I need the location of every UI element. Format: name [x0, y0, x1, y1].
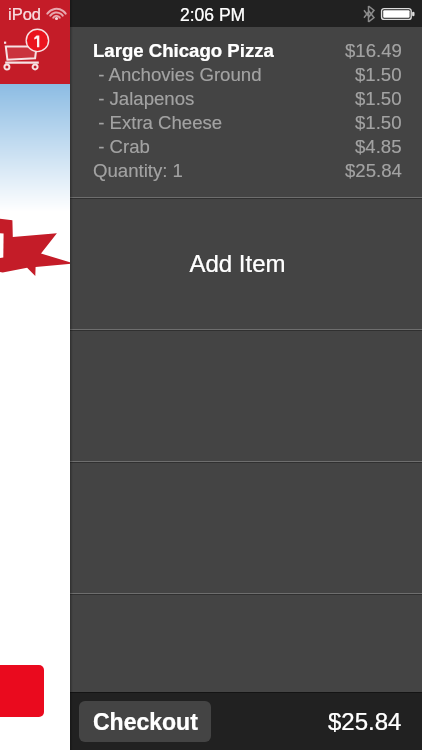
button[interactable]: Order — [0, 665, 44, 717]
button[interactable]: Add Item — [70, 199, 422, 329]
staticText: - Anchovies Ground — [93, 64, 262, 85]
staticText: $1.50 — [355, 112, 402, 133]
staticText: Large Chicago Pizza — [93, 40, 274, 61]
staticText: $16.49 — [345, 40, 402, 61]
staticText: - Extra Cheese — [93, 112, 223, 133]
button[interactable]: Shopping cart, 1 item — [0, 0, 70, 84]
staticText: $4.85 — [355, 136, 402, 157]
staticText: Add Item — [189, 250, 286, 277]
button[interactable]: Checkout — [79, 701, 211, 742]
staticText: $1.50 — [355, 64, 402, 85]
staticText: 2:06 PM — [180, 5, 246, 25]
staticText: Checkout — [93, 709, 198, 735]
staticText: Quantity: 1 — [93, 160, 183, 181]
staticText: - Crab — [93, 136, 150, 157]
staticText: $25.84 — [328, 708, 402, 735]
button[interactable]: Large Chicago Pizza — [93, 38, 402, 197]
staticText: - Jalapenos — [93, 88, 195, 109]
staticText: $1.50 — [355, 88, 402, 109]
staticText: iPod — [8, 5, 42, 23]
staticText: $25.84 — [345, 160, 402, 181]
